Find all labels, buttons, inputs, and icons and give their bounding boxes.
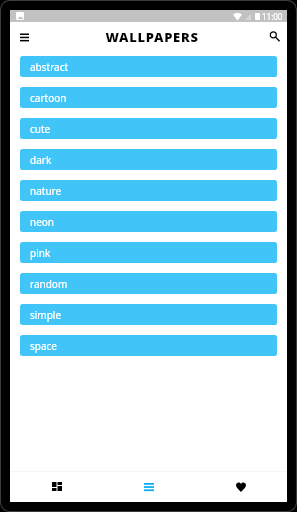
staticText: cute xyxy=(30,122,51,136)
staticText: space xyxy=(30,339,57,353)
staticText: nature xyxy=(30,184,62,198)
staticText: abstract xyxy=(30,60,69,74)
staticText: neon xyxy=(30,215,55,229)
staticText: cartoon xyxy=(30,91,67,105)
button[interactable]: abstract xyxy=(20,56,277,77)
button[interactable]: simple xyxy=(20,304,277,325)
staticText: pink xyxy=(30,246,51,260)
button[interactable]: pink xyxy=(20,242,277,263)
button[interactable]: neon xyxy=(20,211,277,232)
button[interactable]: random xyxy=(20,273,277,294)
button[interactable]: Favorites xyxy=(195,472,287,502)
button[interactable]: Wallpapers xyxy=(103,472,195,502)
button[interactable]: Categories xyxy=(10,472,103,502)
button[interactable]: cartoon xyxy=(20,87,277,108)
staticText: simple xyxy=(30,308,62,322)
button[interactable]: Menu xyxy=(12,26,36,50)
staticText: 11:00 xyxy=(262,11,283,22)
button[interactable]: space xyxy=(20,335,277,356)
staticText: dark xyxy=(30,153,52,167)
staticText: WALLPAPERS xyxy=(105,28,199,46)
button[interactable]: dark xyxy=(20,149,277,170)
button[interactable]: nature xyxy=(20,180,277,201)
button[interactable]: cute xyxy=(20,118,277,139)
staticText: random xyxy=(30,277,68,291)
button[interactable]: Search xyxy=(263,26,287,50)
